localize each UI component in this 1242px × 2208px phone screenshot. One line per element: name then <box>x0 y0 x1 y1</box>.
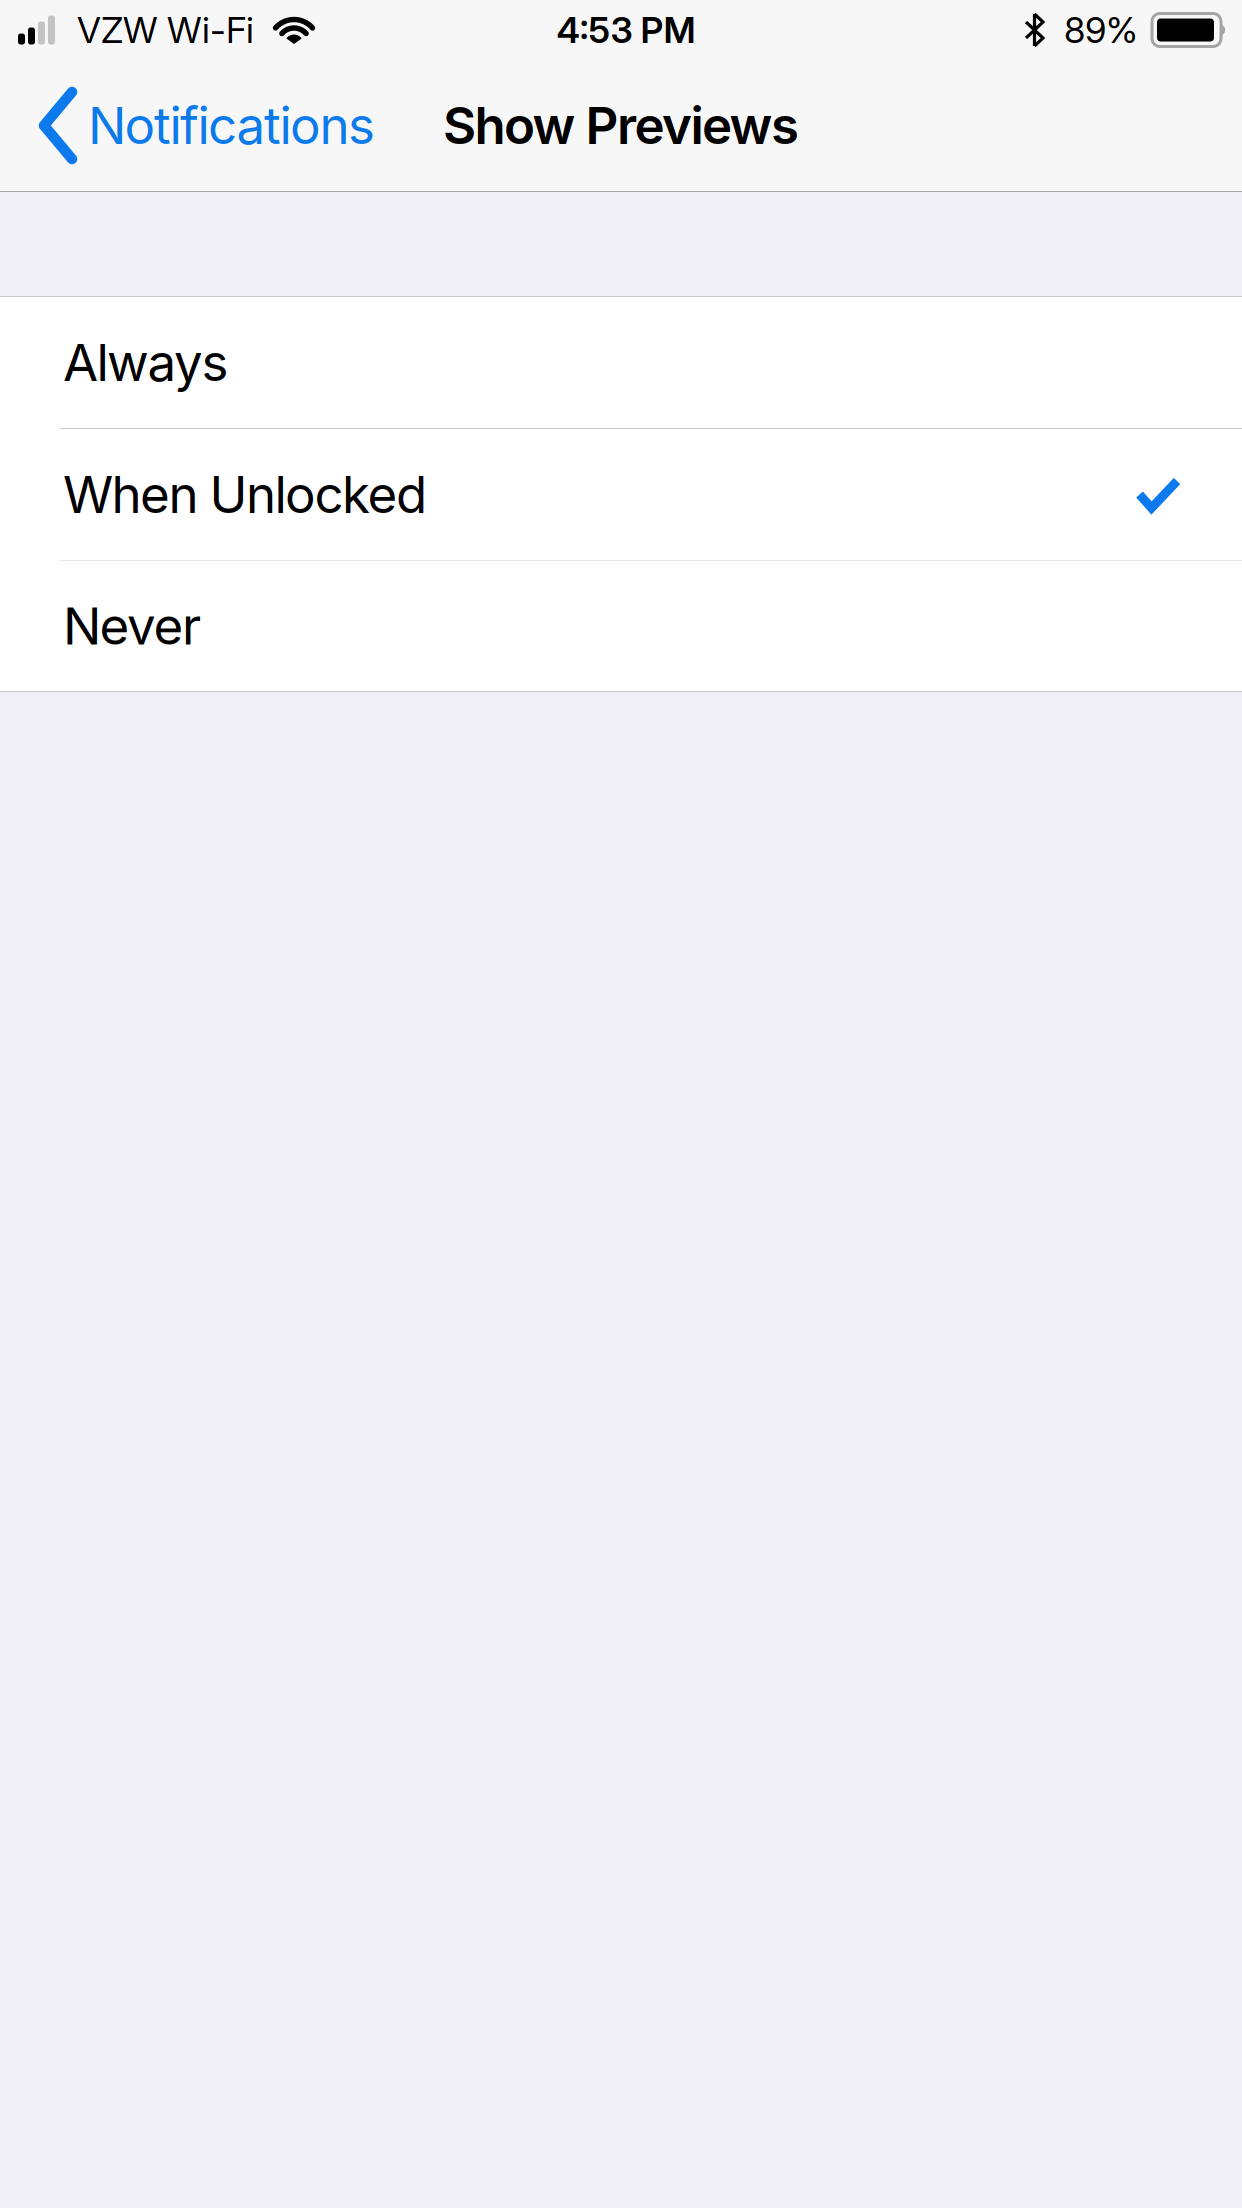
button[interactable]: When Unlocked <box>0 429 1242 560</box>
staticText: Show Previews <box>443 95 799 156</box>
staticText: Never <box>63 595 201 657</box>
staticText: VZW Wi-Fi <box>77 8 254 52</box>
button[interactable]: Never <box>0 560 1242 691</box>
staticText: Notifications <box>88 95 375 156</box>
button[interactable]: Always <box>0 297 1242 428</box>
staticText: When Unlocked <box>63 464 427 525</box>
staticText: 4:53 PM <box>556 8 695 52</box>
button[interactable]: Back to Notifications <box>0 86 375 164</box>
staticText: 89% <box>1064 8 1138 52</box>
staticText: Always <box>63 332 228 393</box>
